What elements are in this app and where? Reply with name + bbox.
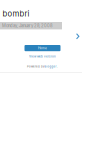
- staticText: Blogger: [44, 65, 56, 68]
- staticText: bombri: [3, 9, 30, 18]
- staticText: Home: [38, 46, 47, 50]
- button[interactable]: View web version: [0, 54, 85, 59]
- staticText: .: [57, 65, 58, 68]
- staticText: Powered by: [27, 65, 44, 68]
- staticText: Monday, January 28, 2008: [2, 23, 53, 28]
- staticText: View web version: [29, 55, 56, 58]
- button[interactable]: Home: [24, 45, 60, 51]
- button[interactable]: Older posts: [73, 31, 82, 41]
